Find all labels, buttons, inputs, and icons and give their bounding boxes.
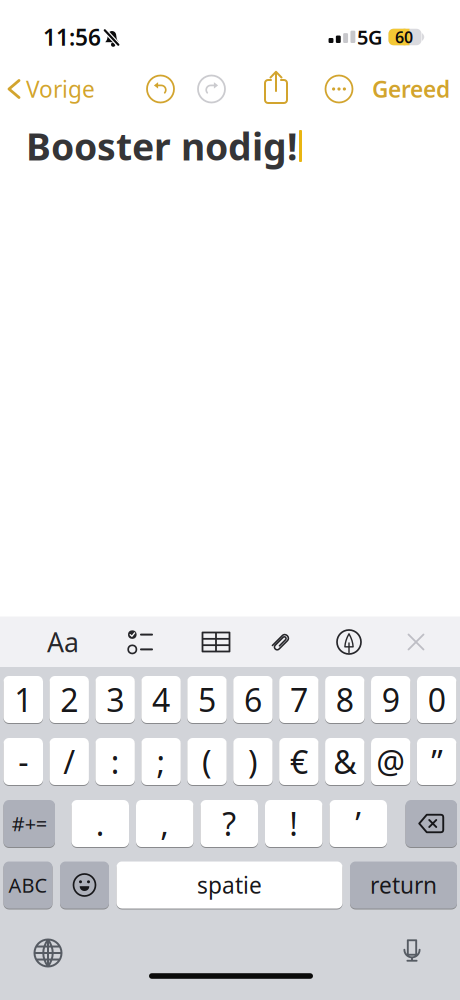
- button[interactable]: Share: [263, 71, 289, 103]
- button[interactable]: @: [371, 737, 410, 785]
- button[interactable]: 5: [187, 675, 227, 723]
- staticText: 0: [428, 678, 446, 721]
- staticText: 60: [395, 26, 413, 48]
- staticText: 4: [152, 678, 170, 721]
- button[interactable]: return: [350, 861, 457, 909]
- button[interactable]: ,: [136, 799, 193, 847]
- staticText: Aa: [47, 624, 79, 660]
- button[interactable]: Dismiss keyboard: [408, 634, 423, 649]
- staticText: -: [18, 740, 28, 783]
- button[interactable]: Undo: [147, 75, 174, 102]
- staticText: spatie: [197, 870, 262, 900]
- staticText: ,: [160, 802, 169, 845]
- button[interactable]: More: [325, 75, 352, 102]
- staticText: :: [111, 740, 120, 783]
- button[interactable]: Emoji: [60, 861, 109, 909]
- staticText: 6: [244, 678, 262, 721]
- button[interactable]: 8: [325, 675, 365, 723]
- button[interactable]: 1: [3, 675, 43, 723]
- button[interactable]: Gereed: [372, 74, 450, 104]
- button[interactable]: 9: [371, 675, 410, 723]
- staticText: 5G: [357, 24, 383, 50]
- button[interactable]: 0: [417, 675, 456, 723]
- staticText: ”: [431, 740, 442, 783]
- staticText: ?: [222, 802, 236, 845]
- button[interactable]: ?: [200, 799, 258, 847]
- staticText: Vorige: [26, 74, 95, 104]
- staticText: €: [290, 740, 308, 783]
- staticText: #+=: [12, 810, 47, 837]
- staticText: 11:56: [43, 22, 101, 52]
- button[interactable]: /: [49, 737, 89, 785]
- button[interactable]: Delete: [405, 799, 457, 847]
- staticText: @: [376, 740, 405, 783]
- staticText: Gereed: [372, 74, 450, 104]
- button[interactable]: 4: [141, 675, 181, 723]
- button[interactable]: ”: [417, 737, 456, 785]
- button[interactable]: Table: [202, 632, 229, 651]
- button[interactable]: ;: [141, 737, 181, 785]
- button[interactable]: Redo: [198, 75, 225, 102]
- button[interactable]: Dictate: [403, 940, 421, 962]
- staticText: return: [370, 870, 437, 900]
- staticText: ;: [157, 740, 166, 783]
- staticText: 3: [106, 678, 124, 721]
- button[interactable]: Attach: [266, 627, 296, 657]
- staticText: .: [96, 802, 105, 845]
- button[interactable]: ): [233, 737, 273, 785]
- staticText: Booster nodig!: [26, 121, 298, 171]
- button[interactable]: 3: [95, 675, 135, 723]
- staticText: 9: [382, 678, 400, 721]
- staticText: /: [63, 740, 75, 783]
- staticText: 7: [290, 678, 308, 721]
- button[interactable]: spatie: [116, 861, 342, 909]
- staticText: 1: [14, 678, 32, 721]
- button[interactable]: :: [95, 737, 135, 785]
- staticText: ): [248, 740, 258, 783]
- staticText: ABC: [8, 872, 47, 898]
- button[interactable]: .: [71, 799, 129, 847]
- button[interactable]: Format: [47, 624, 79, 660]
- button[interactable]: -: [3, 737, 43, 785]
- staticText: ’: [355, 802, 361, 845]
- button[interactable]: Checklist: [128, 631, 152, 653]
- button[interactable]: Vorige: [9, 74, 95, 104]
- staticText: (: [202, 740, 212, 783]
- staticText: &: [333, 740, 356, 783]
- button[interactable]: 6: [233, 675, 273, 723]
- button[interactable]: &: [325, 737, 365, 785]
- staticText: !: [289, 802, 298, 845]
- button[interactable]: #+=: [3, 799, 55, 847]
- button[interactable]: 2: [49, 675, 89, 723]
- button[interactable]: €: [279, 737, 319, 785]
- staticText: 8: [336, 678, 354, 721]
- button[interactable]: ’: [329, 799, 387, 847]
- button[interactable]: Next keyboard: [33, 938, 63, 968]
- button[interactable]: 7: [279, 675, 319, 723]
- button[interactable]: (: [187, 737, 227, 785]
- staticText: 5: [198, 678, 216, 721]
- button[interactable]: ABC: [3, 861, 52, 909]
- staticText: 2: [60, 678, 78, 721]
- button[interactable]: !: [265, 799, 322, 847]
- button[interactable]: Markup: [337, 630, 361, 654]
